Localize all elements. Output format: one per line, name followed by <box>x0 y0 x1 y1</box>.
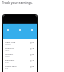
staticText: Airport <box>5 52 14 55</box>
button[interactable]: Delivery <box>5 58 35 64</box>
staticText: Track your earnings. <box>2 1 33 5</box>
staticText: Grocery <box>5 46 14 49</box>
staticText: Today <box>5 43 11 46</box>
staticText: $24 <box>30 40 35 43</box>
staticText: Uber trip <box>5 40 16 43</box>
staticText: Delivery <box>5 58 15 61</box>
button[interactable]: Grocery <box>5 46 35 52</box>
staticText: Night fare <box>5 64 17 67</box>
staticText: $42 <box>30 52 35 55</box>
staticText: Mon <box>5 55 10 58</box>
staticText: $12 <box>30 58 35 61</box>
button[interactable]: Airport <box>5 52 35 58</box>
staticText: $36 <box>30 64 35 67</box>
staticText: Yest. <box>5 49 10 52</box>
staticText: Sat <box>5 67 9 70</box>
button[interactable]: Uber trip <box>5 40 35 46</box>
staticText: Sun <box>5 61 9 64</box>
button[interactable]: Night fare <box>5 64 35 70</box>
staticText: $18 <box>30 46 35 49</box>
